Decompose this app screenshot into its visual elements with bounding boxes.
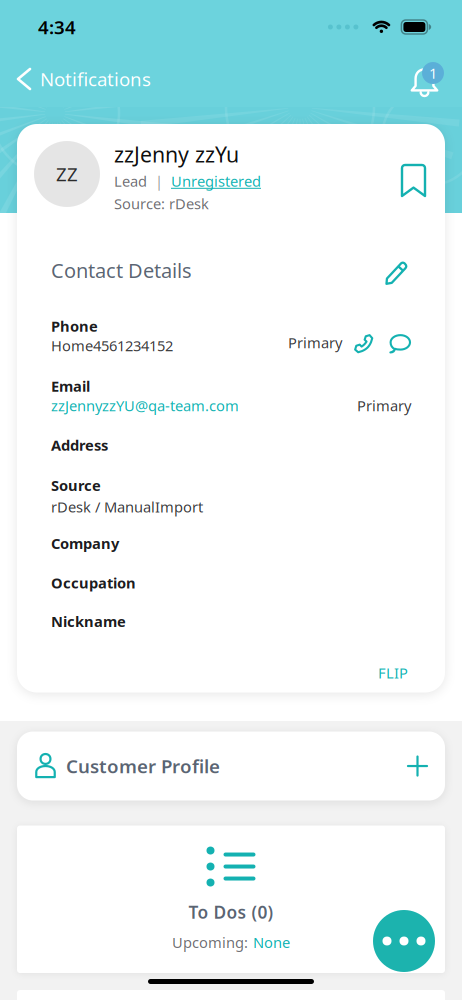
staticText: Source: rDesk <box>114 194 209 213</box>
button[interactable]: Message <box>389 333 411 354</box>
button[interactable]: Call <box>353 333 374 354</box>
staticText: Contact Details <box>51 257 192 284</box>
staticText: Upcoming: <box>172 933 248 952</box>
staticText: Lead <box>114 171 147 191</box>
staticText: Nickname <box>51 612 126 631</box>
staticText: Address <box>51 435 108 455</box>
button[interactable]: Customer Profile <box>17 731 445 800</box>
staticText: Primary <box>357 396 411 415</box>
staticText: zzJennyzzYU@qa-team.com <box>51 396 239 415</box>
staticText: Primary <box>288 333 342 352</box>
staticText: To Dos (0) <box>188 900 273 923</box>
button[interactable]: Edit contact details <box>382 256 411 284</box>
staticText: Unregistered <box>171 171 261 191</box>
button[interactable]: Bookmark <box>394 140 425 204</box>
staticText: None <box>253 933 290 952</box>
staticText: Notifications <box>40 67 151 91</box>
staticText: Customer Profile <box>66 754 220 778</box>
button[interactable]: FLIP <box>375 660 411 686</box>
staticText: Email <box>51 376 90 396</box>
staticText: ZZ <box>56 162 78 186</box>
staticText: FLIP <box>378 663 408 683</box>
button[interactable]: Notifications <box>411 57 462 101</box>
staticText: Home4561234152 <box>51 336 173 355</box>
staticText: Phone <box>51 316 98 336</box>
staticText: 1 <box>429 63 437 83</box>
staticText: zzJenny zzYu <box>114 140 239 168</box>
button[interactable]: Notifications <box>0 59 159 99</box>
staticText: Source <box>51 476 101 495</box>
button[interactable]: More actions <box>373 910 435 972</box>
staticText: | <box>147 171 171 191</box>
staticText: 4:34 <box>38 15 76 39</box>
staticText: rDesk / ManualImport <box>51 497 203 517</box>
staticText: Company <box>51 534 119 553</box>
staticText: Occupation <box>51 573 136 593</box>
